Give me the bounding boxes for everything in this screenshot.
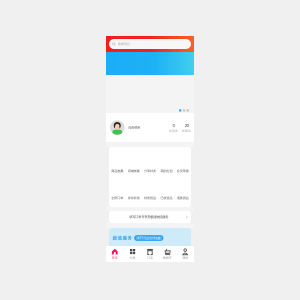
button[interactable]: 已收货品 [158, 196, 175, 200]
button[interactable]: 点击登录 [106, 113, 194, 142]
button[interactable]: 首页 [106, 246, 124, 262]
button[interactable]: 会员等级 [175, 169, 191, 173]
button[interactable]: 退换货品 [175, 196, 191, 200]
button[interactable]: 门店 [141, 246, 159, 262]
staticText: 待发货品 [144, 196, 156, 200]
button[interactable]: 待发货品 [142, 196, 158, 200]
button[interactable]: 待付款项 [125, 196, 142, 200]
staticText: 购物车 [163, 256, 172, 260]
staticText: 商品收藏 [111, 169, 123, 173]
staticText: 门店 [147, 256, 153, 260]
staticText: 填写订单号享受极速物流服务 [129, 215, 168, 219]
staticText: 收藏品 [182, 129, 191, 132]
staticText: 超值服务 [112, 235, 132, 241]
button[interactable]: 全部订单 [109, 196, 125, 200]
staticText: 满99元起全场包邮 [136, 236, 161, 240]
staticText: 我的 [182, 256, 188, 260]
button[interactable]: 填写订单号享受极速物流服务 [106, 211, 194, 223]
staticText: 点击登录 [128, 125, 140, 130]
staticText: 待付款项 [128, 196, 140, 200]
staticText: 会员等级 [177, 169, 189, 173]
staticText: 搜索商品 [117, 42, 129, 46]
button[interactable]: 分类 [124, 246, 141, 262]
button[interactable]: 购物车 [159, 246, 176, 262]
staticText: 我的红包 [160, 169, 172, 173]
button[interactable]: 分享好友 [142, 169, 158, 173]
button[interactable]: 商品收藏 [109, 169, 125, 173]
button[interactable]: 20 [180, 122, 193, 132]
staticText: 20 [184, 122, 188, 128]
staticText: 退换货品 [177, 196, 189, 200]
staticText: 店铺收藏 [128, 169, 140, 173]
button[interactable]: 搜索商品 [109, 39, 191, 49]
staticText: 0 [172, 122, 174, 128]
button[interactable]: 店铺收藏 [125, 169, 142, 173]
staticText: 全部订单 [111, 196, 123, 200]
button[interactable]: 我的红包 [158, 169, 175, 173]
staticText: 已收货品 [160, 196, 172, 200]
button[interactable]: 0 [167, 122, 180, 132]
staticText: 分享好友 [144, 169, 156, 173]
staticText: 首页 [112, 256, 118, 260]
staticText: 分类 [129, 256, 135, 260]
button[interactable]: 我的 [176, 246, 194, 262]
staticText: 优惠券 [169, 129, 178, 132]
